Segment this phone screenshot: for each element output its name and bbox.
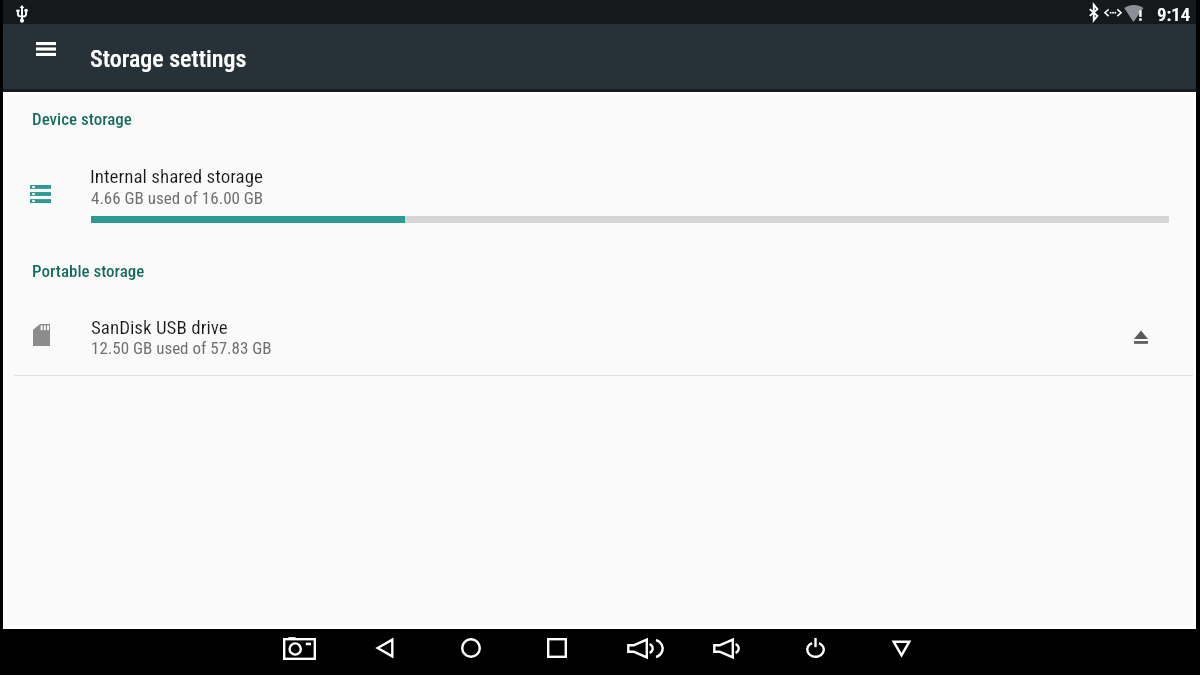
staticText: 9:14 — [1157, 3, 1191, 25]
staticText: Device storage — [32, 109, 132, 129]
button[interactable]: Screenshot — [256, 625, 342, 671]
button[interactable]: Volume down — [686, 625, 772, 671]
staticText: 4.66 GB used of 16.00 GB — [91, 188, 264, 208]
button[interactable]: Power — [772, 625, 858, 671]
button[interactable]: Back — [342, 625, 428, 671]
button[interactable]: Recent apps — [514, 625, 600, 671]
staticText: SanDisk USB drive — [91, 316, 228, 338]
button[interactable]: Home — [428, 625, 514, 671]
staticText: Internal shared storage — [90, 165, 263, 187]
button[interactable]: Open navigation drawer — [22, 25, 70, 73]
button[interactable]: Eject SanDisk USB drive — [1115, 311, 1167, 363]
staticText: Storage settings — [90, 45, 247, 73]
staticText: Portable storage — [32, 261, 145, 281]
button[interactable]: Volume up — [600, 625, 686, 671]
staticText: 12.50 GB used of 57.83 GB — [91, 338, 272, 358]
button[interactable]: SanDisk USB drive — [3, 292, 1196, 375]
button[interactable]: Internal shared storage — [3, 140, 1196, 235]
button[interactable]: Hide navigation bar — [858, 625, 944, 671]
